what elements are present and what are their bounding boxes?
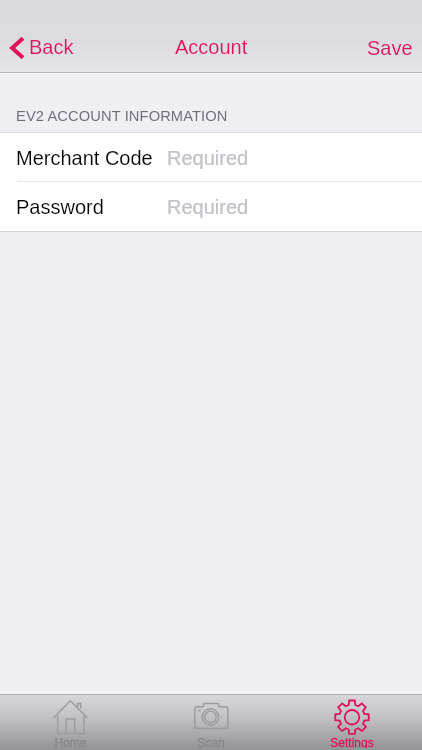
button[interactable]: Password [0,182,422,231]
staticText: EV2 ACCOUNT INFORMATION [16,108,228,124]
staticText: Home [54,736,87,748]
button[interactable]: Save [356,34,422,62]
staticText: Merchant Code [16,147,153,169]
button[interactable]: Settings [281,695,422,750]
staticText: Settings [330,736,374,748]
staticText: Save [367,37,413,59]
button[interactable]: Scan [140,695,281,750]
staticText: Password [16,196,104,218]
staticText: Back [29,36,74,58]
staticText: Scan [197,736,225,748]
button[interactable]: Home [0,695,140,750]
staticText: Required [167,147,249,169]
staticText: Required [167,196,249,218]
staticText: Account [175,36,248,58]
button[interactable]: Merchant Code [0,133,422,182]
button[interactable]: Back [0,33,84,63]
